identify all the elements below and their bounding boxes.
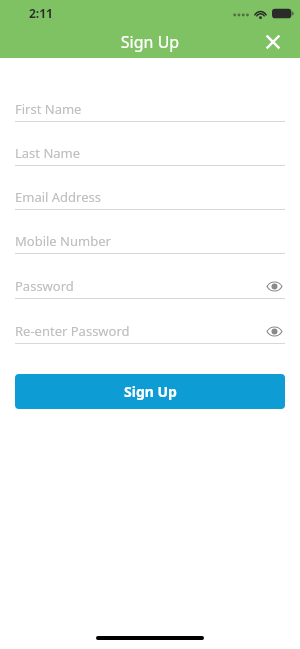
button[interactable]: Last Name — [15, 144, 285, 166]
staticText: Sign Up — [0, 31, 300, 53]
button[interactable]: First Name — [15, 100, 285, 122]
button[interactable]: Mobile Number — [15, 232, 285, 254]
button[interactable]: Email Address — [15, 188, 285, 210]
button[interactable]: Re-enter Password — [15, 322, 285, 344]
staticText: Mobile Number — [15, 232, 111, 250]
staticText: 2:11 — [29, 5, 53, 21]
staticText: Email Address — [15, 188, 101, 206]
button[interactable]: Close — [259, 28, 287, 56]
button[interactable]: Sign Up — [15, 374, 285, 409]
button[interactable]: Toggle password visibility — [263, 275, 285, 297]
button[interactable]: Password — [15, 277, 285, 299]
staticText: Sign Up — [124, 382, 177, 401]
staticText: Password — [15, 277, 74, 295]
staticText: First Name — [15, 100, 82, 118]
staticText: Last Name — [15, 144, 81, 162]
staticText: Re-enter Password — [15, 322, 130, 340]
button[interactable]: Toggle password visibility — [263, 320, 285, 342]
